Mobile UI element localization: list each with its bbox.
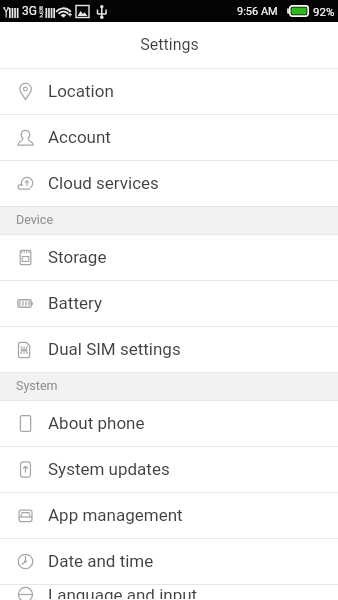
button[interactable]: Storage <box>0 235 338 280</box>
staticText: Battery <box>48 293 102 313</box>
button[interactable]: Cloud services <box>0 161 338 206</box>
button[interactable]: Location <box>0 69 338 114</box>
button[interactable]: Battery <box>0 281 338 326</box>
button[interactable]: Language and input <box>0 585 338 600</box>
staticText: Language and input <box>48 585 198 599</box>
button[interactable]: Dual SIM settings <box>0 327 338 372</box>
staticText: Location <box>48 81 114 101</box>
staticText: System updates <box>48 459 170 479</box>
staticText: Storage <box>48 247 107 267</box>
staticText: Settings <box>140 35 199 54</box>
staticText: Cloud services <box>48 173 159 193</box>
staticText: Date and time <box>48 551 154 571</box>
button[interactable]: App management <box>0 493 338 538</box>
button[interactable]: System updates <box>0 447 338 492</box>
button[interactable]: About phone <box>0 401 338 446</box>
staticText: 3G <box>22 4 37 18</box>
staticText: Dual SIM settings <box>48 339 181 359</box>
staticText: Account <box>48 127 111 147</box>
staticText: 92% <box>313 5 335 18</box>
button[interactable]: Date and time <box>0 539 338 584</box>
staticText: 9:56 AM <box>237 5 278 18</box>
staticText: System <box>16 378 58 393</box>
staticText: App management <box>48 505 183 525</box>
staticText: About phone <box>48 413 145 433</box>
staticText: Device <box>16 212 54 227</box>
button[interactable]: Account <box>0 115 338 160</box>
